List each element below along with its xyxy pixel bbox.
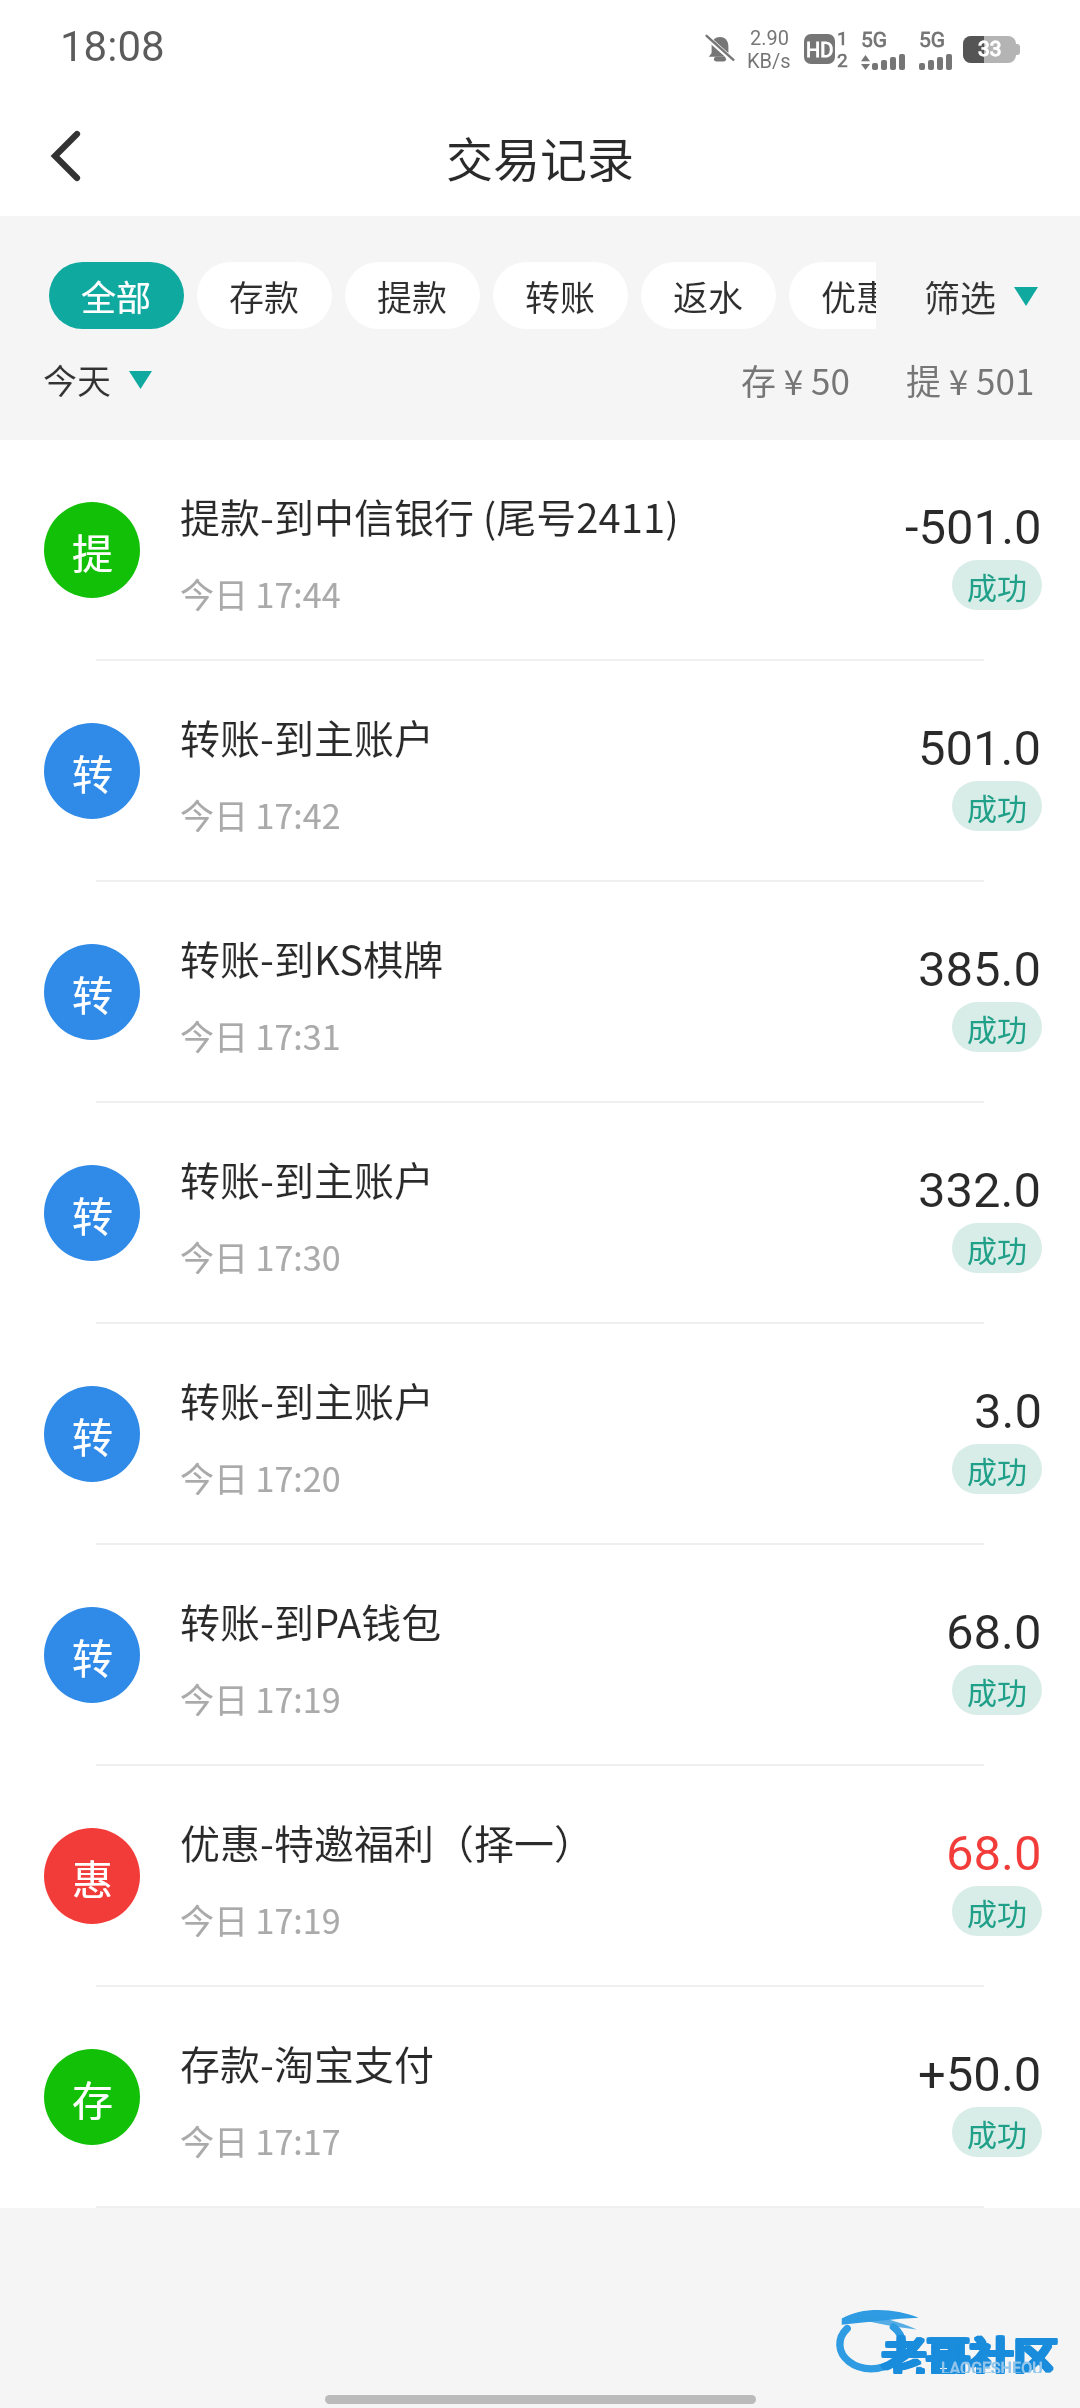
staticText: 5G xyxy=(919,28,946,53)
staticText: 5G xyxy=(861,28,888,53)
staticText: 2 xyxy=(837,49,848,71)
staticText: 今日 17:19 xyxy=(180,1674,341,1723)
staticText: 33 xyxy=(978,37,1002,62)
staticText: 今天 xyxy=(43,355,111,404)
staticText: 成功 xyxy=(967,2111,1027,2154)
staticText: 转账-到KS棋牌 xyxy=(180,929,444,987)
staticText: 成功 xyxy=(967,785,1027,828)
staticText: 今日 17:20 xyxy=(180,1453,341,1502)
staticText: 老哥社区 xyxy=(882,2324,1058,2373)
staticText: 老哥社区 xyxy=(884,2324,1060,2373)
staticText: 老哥社区 xyxy=(883,2324,1059,2373)
staticText: 返水 xyxy=(673,270,744,321)
staticText: 68.0 xyxy=(946,1604,1042,1661)
staticText: 老哥社区 xyxy=(880,2323,1056,2372)
staticText: KB/s xyxy=(747,49,791,72)
staticText: 今日 17:19 xyxy=(180,1895,341,1944)
staticText: 老哥社区 xyxy=(881,2324,1057,2373)
staticText: 转 xyxy=(72,742,113,801)
staticText: 2.90 xyxy=(750,26,789,49)
staticText: 优惠 xyxy=(821,270,876,321)
staticText: 3.0 xyxy=(974,1383,1042,1440)
staticText: 成功 xyxy=(967,1890,1027,1933)
button[interactable]: 惠 xyxy=(0,1766,1080,1985)
staticText: 转 xyxy=(72,1405,113,1464)
staticText: 成功 xyxy=(967,1006,1027,1049)
staticText: 转账-到PA钱包 xyxy=(180,1592,442,1650)
staticText: 交易记录 xyxy=(446,122,634,190)
button[interactable]: 返水 xyxy=(641,262,776,329)
staticText: HD xyxy=(806,38,834,61)
button[interactable]: 转 xyxy=(0,882,1080,1101)
staticText: 提 xyxy=(72,521,113,580)
staticText: 老哥社区 xyxy=(884,2325,1060,2374)
staticText: 老哥社区 xyxy=(882,2325,1058,2374)
staticText: +50.0 xyxy=(918,2046,1042,2103)
button[interactable]: 转 xyxy=(0,1103,1080,1322)
staticText: LAOGESHEQU xyxy=(941,2359,1043,2373)
button[interactable]: 优惠 xyxy=(789,262,876,329)
staticText: 332.0 xyxy=(918,1162,1042,1219)
staticText: 老哥社区 xyxy=(881,2325,1057,2374)
staticText: 转 xyxy=(72,963,113,1022)
staticText: 提款-到中信银行 (尾号2411) xyxy=(180,487,679,545)
button[interactable]: 存款 xyxy=(197,262,332,329)
staticText: 老哥社区 xyxy=(880,2325,1056,2374)
staticText: 存 ¥ 50 xyxy=(741,354,850,405)
staticText: 今日 17:44 xyxy=(180,569,341,618)
button[interactable]: 筛选 xyxy=(924,262,1038,330)
button[interactable]: 全部 xyxy=(49,262,184,329)
staticText: 385.0 xyxy=(918,941,1042,998)
staticText: 今日 17:17 xyxy=(180,2116,341,2165)
staticText: 今日 17:30 xyxy=(180,1232,341,1281)
staticText: 成功 xyxy=(967,1669,1027,1712)
staticText: 存 xyxy=(72,2068,113,2127)
button[interactable]: 转 xyxy=(0,1324,1080,1543)
button[interactable]: 提 xyxy=(0,440,1080,659)
staticText: 转账-到主账户 xyxy=(180,1371,434,1429)
button[interactable]: Back xyxy=(24,114,108,198)
staticText: 提款 xyxy=(377,270,448,321)
staticText: 501.0 xyxy=(918,720,1042,777)
staticText: 全部 xyxy=(81,270,152,321)
staticText: 转账 xyxy=(525,270,596,321)
staticText: 18:08 xyxy=(60,22,165,71)
button[interactable]: 今天 xyxy=(43,355,152,404)
staticText: 惠 xyxy=(72,1847,113,1906)
staticText: 转账-到主账户 xyxy=(180,1150,434,1208)
staticText: 提 ¥ 501 xyxy=(906,354,1035,405)
staticText: 筛选 xyxy=(924,270,997,322)
staticText: -501.0 xyxy=(905,499,1042,556)
staticText: 成功 xyxy=(967,1227,1027,1270)
staticText: 68.0 xyxy=(946,1825,1042,1882)
staticText: 转 xyxy=(72,1626,113,1685)
staticText: 1 xyxy=(837,27,848,49)
staticText: 老哥社区 xyxy=(883,2325,1059,2374)
button[interactable]: 存 xyxy=(0,1987,1080,2206)
button[interactable]: 转账 xyxy=(493,262,628,329)
staticText: 老哥社区 xyxy=(884,2323,1060,2372)
staticText: 老哥社区 xyxy=(882,2323,1058,2372)
staticText: 老哥社区 xyxy=(881,2323,1057,2372)
button[interactable]: 提款 xyxy=(345,262,480,329)
staticText: 转账-到主账户 xyxy=(180,708,434,766)
button[interactable]: 转 xyxy=(0,661,1080,880)
staticText: 今日 17:31 xyxy=(180,1011,341,1060)
staticText: 今日 17:42 xyxy=(180,790,341,839)
staticText: 老哥社区 xyxy=(883,2323,1059,2372)
button[interactable]: 转 xyxy=(0,1545,1080,1764)
staticText: 转 xyxy=(72,1184,113,1243)
staticText: 存款-淘宝支付 xyxy=(180,2034,434,2092)
staticText: 存款 xyxy=(229,270,300,321)
staticText: 成功 xyxy=(967,1448,1027,1491)
staticText: 优惠-特邀福利（择一） xyxy=(180,1813,594,1871)
staticText: 老哥社区 xyxy=(880,2324,1056,2373)
staticText: 成功 xyxy=(967,564,1027,607)
